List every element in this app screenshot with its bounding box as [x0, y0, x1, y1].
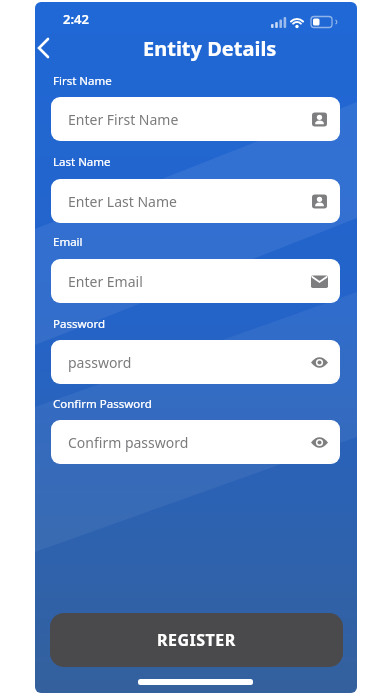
button[interactable] — [35, 35, 51, 61]
staticText: Last Name — [53, 154, 111, 170]
button[interactable]: Confirm password — [51, 420, 340, 464]
staticText: Password — [53, 316, 106, 332]
staticText: First Name — [53, 73, 112, 89]
button[interactable]: Enter First Name — [51, 97, 340, 141]
staticText: Enter Email — [68, 272, 143, 291]
staticText: Enter First Name — [68, 110, 179, 129]
staticText: Enter Last Name — [68, 192, 177, 211]
button[interactable]: Enter Last Name — [51, 179, 340, 223]
staticText: Entity Details — [143, 35, 277, 62]
staticText: password — [68, 353, 132, 372]
button[interactable]: REGISTER — [50, 613, 343, 667]
staticText: Confirm password — [68, 433, 189, 452]
button[interactable]: password — [51, 340, 340, 384]
staticText: REGISTER — [157, 629, 236, 651]
button[interactable]: Enter Email — [51, 259, 340, 303]
staticText: Email — [53, 234, 83, 250]
staticText: Confirm Password — [53, 396, 152, 412]
staticText: 2:42 — [63, 10, 89, 28]
